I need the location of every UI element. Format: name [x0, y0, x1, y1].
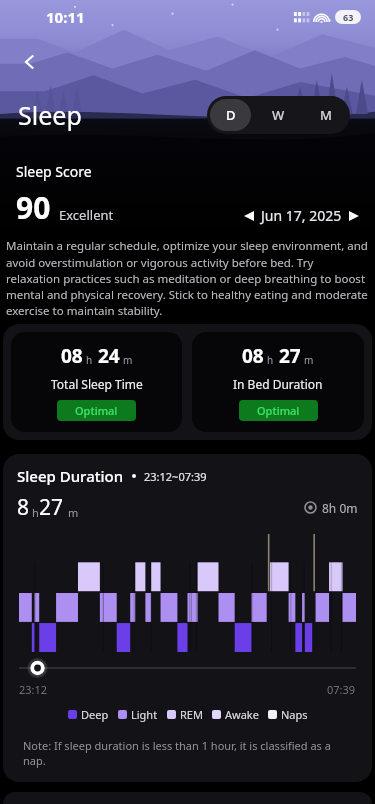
staticText: m [123, 353, 133, 367]
staticText: 08 [61, 343, 83, 369]
button[interactable]: D [210, 99, 251, 131]
staticText: Note: If sleep duration is less than 1 h… [23, 738, 352, 768]
staticText: M [320, 106, 332, 124]
staticText: Optimal [257, 403, 300, 418]
staticText: D [226, 106, 236, 124]
staticText: Sleep Score [16, 162, 92, 181]
button[interactable]: W [257, 99, 299, 131]
staticText: Awake [225, 707, 259, 722]
staticText: m [304, 353, 314, 367]
staticText: 90 [16, 187, 51, 228]
staticText: Maintain a regular schedule, optimize yo… [6, 238, 369, 318]
staticText: W [272, 106, 285, 124]
staticText: Naps [281, 707, 308, 722]
staticText: 10:11 [46, 7, 85, 27]
staticText: Sleep [18, 98, 82, 132]
staticText: 8 [17, 493, 30, 522]
staticText: 23:12~07:39 [144, 469, 207, 484]
staticText: Deep [81, 707, 109, 722]
staticText: Jun 17, 2025 [261, 206, 342, 225]
button[interactable]: 08 [11, 332, 182, 432]
staticText: h [32, 505, 39, 520]
staticText: Light [131, 707, 158, 722]
staticText: 63 [343, 11, 354, 23]
button[interactable]: Back [10, 42, 50, 82]
staticText: In Bed Duration [233, 376, 323, 392]
staticText: 24 [98, 343, 120, 369]
staticText: 08 [242, 343, 264, 369]
staticText: Sleep Duration [17, 466, 124, 486]
staticText: REM [180, 707, 203, 722]
staticText: m [68, 505, 79, 520]
staticText: 27 [279, 343, 301, 369]
staticText: h [86, 353, 93, 367]
staticText: h [267, 353, 274, 367]
staticText: Excellent [59, 206, 114, 224]
button[interactable]: M [305, 99, 347, 131]
staticText: Total Sleep Time [51, 376, 143, 392]
staticText: 07:39 [327, 682, 356, 697]
button[interactable]: 08 [192, 332, 364, 432]
button[interactable]: Jun 17, 2025 [244, 206, 359, 225]
staticText: 23:12 [19, 682, 48, 697]
staticText: 8h 0m [322, 500, 358, 516]
staticText: 27 [39, 493, 64, 522]
staticText: Optimal [75, 403, 118, 418]
